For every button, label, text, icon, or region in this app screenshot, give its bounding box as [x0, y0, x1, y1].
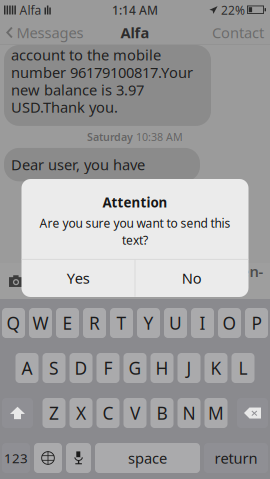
staticText: number 96179100817.Your [11, 62, 193, 82]
button[interactable]: Q [2, 308, 25, 338]
staticText: V [130, 401, 140, 424]
staticText: X [76, 401, 86, 424]
button[interactable]: Send [232, 270, 264, 292]
button[interactable]: return [204, 443, 268, 473]
staticText: O [222, 311, 236, 334]
button[interactable]: space [95, 443, 200, 473]
staticText: 123 [4, 449, 28, 467]
staticText: Saturday [87, 130, 133, 144]
button[interactable]: Next keyboard [34, 443, 62, 473]
staticText: S [49, 356, 59, 379]
button[interactable]: Yes [22, 260, 135, 297]
button[interactable]: J [177, 353, 200, 383]
button[interactable]: V [123, 398, 146, 428]
button[interactable]: D [69, 353, 92, 383]
staticText: J [186, 356, 191, 379]
staticText: P [251, 311, 261, 334]
staticText: account to the mobile [11, 45, 161, 64]
staticText: B [156, 401, 167, 424]
button[interactable]: Shift [2, 398, 33, 428]
button[interactable]: T [110, 308, 133, 338]
staticText: 1:14 AM [112, 2, 158, 18]
button[interactable]: I [191, 308, 214, 338]
button[interactable]: No [135, 260, 248, 297]
staticText: USD.Thank you. [11, 97, 118, 117]
staticText: N [182, 401, 195, 424]
button[interactable]: Take photo [6, 270, 26, 292]
button[interactable]: K [204, 353, 227, 383]
button[interactable]: Y [137, 308, 160, 338]
staticText: Are you sure you want to send this [39, 215, 230, 231]
staticText: G [128, 356, 141, 379]
staticText: K [210, 356, 221, 379]
staticText: L [238, 356, 247, 379]
staticText: A [21, 356, 32, 379]
button[interactable]: O [218, 308, 241, 338]
button[interactable]: C [96, 398, 119, 428]
button[interactable]: U [164, 308, 187, 338]
staticText: H [155, 356, 168, 379]
staticText: Send [232, 261, 263, 300]
button[interactable]: R [83, 308, 106, 338]
button[interactable]: E [56, 308, 79, 338]
button[interactable]: H [150, 353, 173, 383]
staticText: D [74, 356, 87, 379]
staticText: Messages [17, 23, 84, 42]
button[interactable]: Messages [0, 20, 89, 45]
staticText: 10:38 AM [136, 130, 183, 144]
button[interactable]: Delete [237, 398, 268, 428]
staticText: R [89, 311, 100, 334]
staticText: Contact [212, 23, 264, 42]
staticText: C [102, 401, 113, 424]
staticText: return [214, 448, 257, 468]
button[interactable]: Dictate [66, 443, 91, 473]
button[interactable]: F [96, 353, 119, 383]
button[interactable]: G [123, 353, 146, 383]
staticText: No [182, 268, 202, 288]
button[interactable]: L [231, 353, 254, 383]
staticText: M [208, 401, 224, 424]
staticText: U [169, 311, 182, 334]
staticText: I [199, 311, 205, 334]
button[interactable]: P [245, 308, 268, 338]
button[interactable]: A [15, 353, 38, 383]
staticText: Dear user, you have [11, 155, 145, 174]
staticText: F [103, 356, 112, 379]
staticText: text? [122, 232, 148, 248]
staticText: E [62, 311, 72, 334]
staticText: Q [6, 311, 20, 334]
staticText: 22% [218, 2, 245, 18]
staticText: Alfa [120, 23, 149, 42]
staticText: Y [143, 311, 153, 334]
button[interactable]: N [177, 398, 200, 428]
staticText: W [32, 311, 48, 334]
button[interactable]: Z [42, 398, 65, 428]
button[interactable]: B [150, 398, 173, 428]
staticText: Z [49, 401, 59, 424]
staticText: Alfa [16, 2, 44, 18]
button[interactable]: W [29, 308, 52, 338]
button[interactable]: X [69, 398, 92, 428]
button[interactable]: Contact [206, 20, 270, 45]
button[interactable]: 123 [2, 443, 30, 473]
staticText: space [128, 448, 167, 468]
button[interactable]: M [204, 398, 227, 428]
staticText: Yes [67, 268, 90, 288]
staticText: new balance is 3.97 [11, 80, 144, 99]
button[interactable]: S [42, 353, 65, 383]
staticText: T [116, 311, 126, 334]
staticText: Attention [102, 193, 167, 211]
